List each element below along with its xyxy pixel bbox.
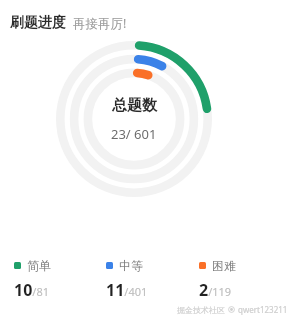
staticText: 掘金技术社区 — [177, 305, 225, 315]
button[interactable]: 中等 — [106, 258, 199, 301]
staticText: 10/81 — [14, 279, 49, 301]
staticText: 困难 — [212, 258, 236, 273]
staticText: 总题数 — [112, 96, 157, 115]
staticText: 刷题进度 — [10, 14, 66, 32]
staticText: 23/ 601 — [111, 125, 157, 143]
button[interactable]: 总题数 — [51, 36, 217, 202]
staticText: 中等 — [119, 258, 143, 273]
button[interactable]: 刷题进度 — [10, 14, 127, 32]
staticText: qwert123211 — [238, 304, 288, 315]
button[interactable]: 困难 — [199, 258, 292, 301]
staticText: 2/119 — [199, 279, 232, 301]
staticText: 再接再厉! — [73, 15, 127, 32]
button[interactable]: 简单 — [14, 258, 106, 301]
staticText: 11/401 — [106, 279, 148, 301]
staticText: 简单 — [27, 258, 51, 273]
